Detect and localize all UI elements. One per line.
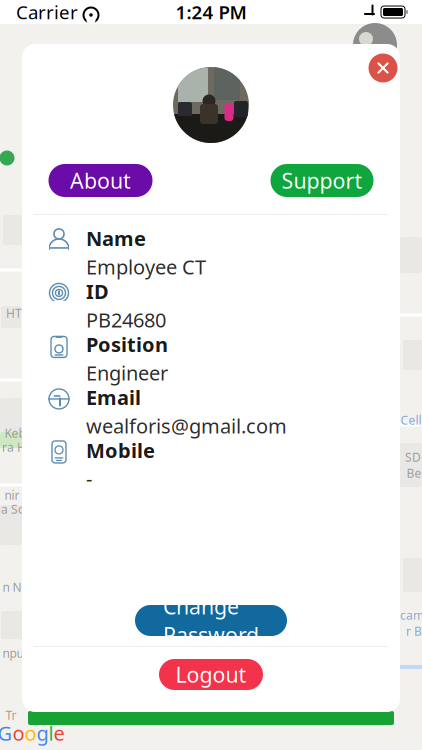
staticText: a So — [1, 501, 25, 517]
staticText: g — [36, 720, 48, 746]
button[interactable]: Support — [270, 164, 373, 197]
staticText: o — [24, 720, 36, 746]
staticText: HT — [6, 305, 22, 321]
staticText: About — [70, 166, 131, 195]
staticText: o — [12, 720, 24, 746]
staticText: - — [86, 465, 92, 492]
staticText: e — [53, 720, 64, 746]
staticText: PB24680 — [86, 306, 166, 333]
staticText: Support — [281, 166, 362, 195]
staticText: wealforis@gmail.com — [86, 412, 287, 439]
button[interactable]: About — [48, 164, 152, 197]
staticText: 1:24 PM — [175, 0, 246, 24]
staticText: G — [0, 720, 12, 746]
staticText: npu — [2, 645, 23, 661]
staticText: Carrier — [16, 0, 78, 24]
staticText: Position — [86, 331, 168, 357]
staticText: l — [48, 720, 53, 746]
staticText: ra H — [2, 439, 26, 455]
staticText: Keb — [4, 425, 25, 441]
staticText: ID — [86, 278, 109, 304]
staticText: Cell — [400, 412, 421, 428]
staticText: r B — [406, 623, 422, 639]
staticText: Be — [406, 465, 421, 481]
staticText: Engineer — [86, 359, 168, 386]
staticText: Change Password — [163, 592, 259, 649]
staticText: nir — [4, 487, 19, 503]
staticText: cam — [400, 607, 422, 623]
staticText: Email — [86, 384, 141, 410]
staticText: Mobile — [86, 437, 155, 463]
staticText: n N — [2, 579, 21, 595]
staticText: Logout — [175, 660, 246, 689]
staticText: Employee CT — [86, 253, 206, 280]
button[interactable]: Close — [367, 52, 399, 84]
button[interactable]: Change Password — [135, 605, 287, 636]
staticText: Name — [86, 225, 146, 251]
staticText: Tr — [5, 707, 16, 723]
staticText: SD — [405, 449, 421, 465]
button[interactable]: Logout — [159, 659, 263, 690]
